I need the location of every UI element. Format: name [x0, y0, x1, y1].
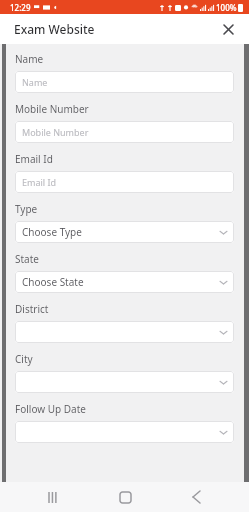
staticText: Follow Up Date: [15, 402, 86, 416]
button[interactable]: Name: [15, 71, 234, 93]
button[interactable]: Choose Type: [15, 221, 234, 243]
staticText: Name: [22, 76, 48, 88]
staticText: 100%: [216, 2, 237, 13]
button[interactable]: Home: [107, 482, 143, 512]
staticText: Mobile Number: [15, 102, 89, 116]
staticText: Type: [15, 202, 38, 216]
staticText: Mobile Number: [22, 126, 89, 138]
staticText: District: [15, 302, 49, 316]
button[interactable]: Recents: [35, 482, 71, 512]
button[interactable]: Mobile Number: [15, 121, 234, 143]
staticText: City: [15, 352, 33, 366]
button[interactable]: Back: [178, 482, 214, 512]
button[interactable]: [15, 371, 234, 393]
staticText: Email Id: [22, 176, 57, 188]
button[interactable]: Close: [217, 18, 239, 40]
staticText: Choose State: [22, 275, 84, 289]
staticText: Exam Website: [14, 21, 95, 37]
button[interactable]: [15, 421, 234, 443]
button[interactable]: Choose State: [15, 271, 234, 293]
button[interactable]: [15, 321, 234, 343]
staticText: Name: [15, 52, 44, 66]
staticText: 12:29: [10, 2, 31, 13]
staticText: Email Id: [15, 152, 53, 166]
staticText: State: [15, 252, 39, 266]
staticText: Choose Type: [22, 225, 82, 239]
button[interactable]: Email Id: [15, 171, 234, 193]
